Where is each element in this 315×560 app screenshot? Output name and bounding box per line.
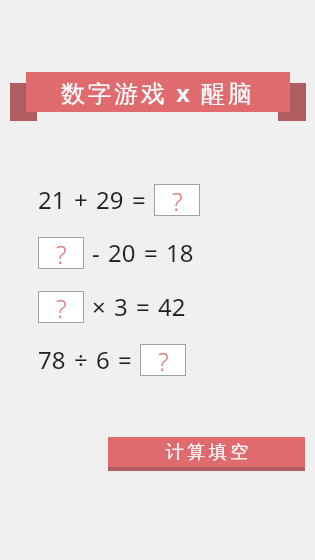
staticText: 20 xyxy=(108,236,136,269)
staticText: = xyxy=(132,183,146,216)
staticText: 3 xyxy=(114,290,128,323)
staticText: 18 xyxy=(166,236,194,269)
staticText: ÷ xyxy=(74,343,88,376)
staticText: 29 xyxy=(96,183,124,216)
staticText: 6 xyxy=(96,343,110,376)
button[interactable]: Answer blank xyxy=(140,344,186,376)
staticText: = xyxy=(118,343,132,376)
button[interactable]: Answer blank xyxy=(38,291,84,323)
staticText: - xyxy=(92,236,100,269)
staticText: = xyxy=(136,290,150,323)
staticText: + xyxy=(74,183,88,216)
staticText: ? xyxy=(56,291,67,323)
staticText: ? xyxy=(172,184,183,216)
staticText: 78 xyxy=(38,343,66,376)
button[interactable]: Answer blank xyxy=(38,237,84,269)
button[interactable]: Answer blank xyxy=(154,184,200,216)
staticText: 数字游戏 x 醒脑 xyxy=(61,76,255,109)
staticText: ? xyxy=(56,237,67,269)
staticText: ? xyxy=(158,344,169,376)
staticText: 42 xyxy=(158,290,186,323)
staticText: 计算填空 xyxy=(164,441,250,464)
button[interactable]: 计算填空 xyxy=(108,437,305,471)
staticText: 21 xyxy=(38,183,66,216)
staticText: × xyxy=(92,290,106,323)
staticText: = xyxy=(144,236,158,269)
